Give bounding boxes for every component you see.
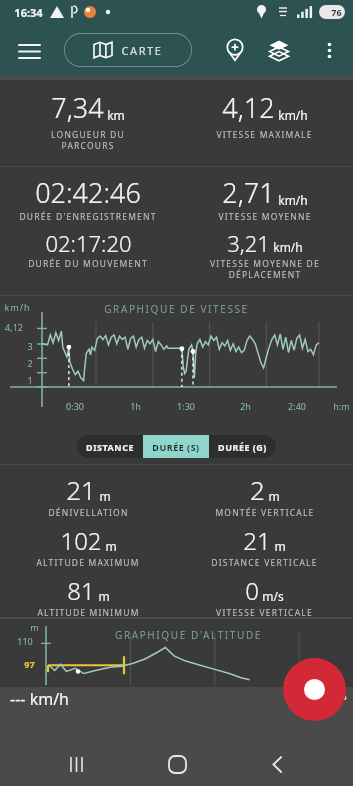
staticText: VITESSE MAXIMALE — [216, 129, 313, 141]
staticText: 81 — [67, 574, 95, 607]
staticText: 02:42:46 — [35, 174, 141, 211]
staticText: DURÉE D'ENREGISTREMENT — [19, 211, 157, 223]
button[interactable]: Back — [253, 742, 301, 786]
staticText: m — [30, 621, 39, 633]
staticText: 21 — [66, 472, 96, 507]
staticText: km/h — [278, 192, 308, 208]
staticText: CARTE — [121, 43, 163, 58]
staticText: m — [99, 488, 111, 504]
staticText: VITESSE MOYENNE — [218, 211, 312, 223]
staticText: 1 — [27, 374, 33, 386]
button[interactable]: Home — [153, 742, 201, 786]
staticText: 3 — [27, 340, 33, 352]
button[interactable]: DURÉE (S) — [143, 435, 209, 458]
staticText: km/h — [278, 107, 308, 123]
staticText: GRAPHIQUE DE VITESSE — [104, 302, 249, 316]
staticText: DURÉE DU MOUVEMENT — [28, 258, 148, 270]
staticText: 110 — [17, 635, 33, 647]
button[interactable]: DISTANCE — [77, 435, 143, 458]
staticText: m — [105, 538, 117, 554]
button[interactable]: Record — [283, 658, 346, 721]
staticText: --- km/h — [10, 688, 69, 710]
staticText: 2 — [27, 357, 33, 369]
staticText: 1h — [130, 400, 141, 412]
staticText: ALTITUDE MINIMUM — [37, 607, 140, 617]
staticText: km — [107, 107, 125, 123]
staticText: 1:30 — [177, 400, 195, 412]
staticText: 2:40 — [288, 400, 306, 412]
staticText: GRAPHIQUE D'ALTITUDE — [115, 628, 262, 642]
staticText: 02:17:20 — [45, 228, 132, 258]
staticText: VITESSE VERTICALE — [216, 607, 313, 617]
staticText: 4,12 — [222, 89, 275, 126]
staticText: 76 — [331, 6, 342, 18]
staticText: DURÉE (S) — [152, 441, 200, 453]
staticText: 0:30 — [66, 400, 84, 412]
staticText: h:m — [333, 400, 350, 412]
staticText: 21 — [243, 524, 271, 557]
button[interactable]: DURÉE (G) — [209, 435, 276, 458]
staticText: DURÉE (G) — [218, 441, 267, 453]
staticText: 16:34 — [14, 5, 43, 20]
staticText: 3,21 — [227, 228, 270, 258]
staticText: DÉNIVELLATION — [48, 507, 129, 519]
staticText: 97 — [24, 658, 35, 670]
staticText: VITESSE MOYENNE DE DÉPLACEMENT — [210, 258, 320, 280]
staticText: km/h — [273, 239, 303, 255]
button[interactable]: Add place — [214, 29, 256, 71]
staticText: m — [98, 588, 110, 604]
staticText: 2h — [240, 400, 251, 412]
staticText: km/h — [4, 301, 31, 313]
staticText: 102 — [60, 524, 102, 557]
staticText: 2 — [250, 472, 265, 507]
staticText: ---° — [330, 692, 347, 708]
staticText: LONGUEUR DU PARCOURS — [51, 129, 125, 151]
staticText: m/s — [262, 588, 284, 604]
staticText: DISTANCE VERTICALE — [211, 557, 318, 569]
staticText: ALTITUDE MAXIMUM — [36, 557, 140, 569]
staticText: m — [274, 538, 286, 554]
staticText: 0 — [245, 574, 259, 607]
button[interactable]: Recent apps — [52, 742, 100, 786]
staticText: 2,71 — [222, 174, 275, 211]
staticText: 7,34 — [51, 89, 104, 126]
button[interactable]: Menu — [8, 29, 50, 71]
staticText: MONTÉE VERTICALE — [215, 507, 315, 519]
button[interactable]: Layers — [258, 29, 300, 71]
staticText: 4,12 — [5, 321, 23, 333]
staticText: m — [268, 488, 280, 504]
button[interactable]: More options — [308, 29, 350, 71]
button[interactable]: CARTE — [64, 33, 192, 67]
staticText: DISTANCE — [86, 441, 134, 453]
